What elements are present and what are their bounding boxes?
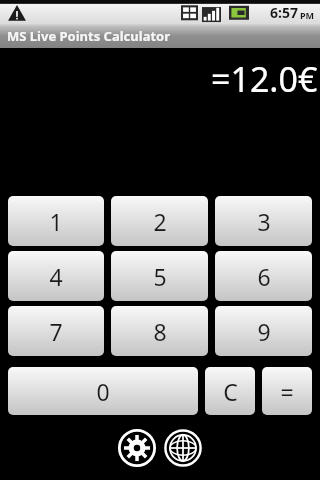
staticText: 6 <box>257 261 271 292</box>
button[interactable]: 2 <box>111 196 208 246</box>
button[interactable]: 1 <box>8 196 104 246</box>
staticText: 6:57 <box>270 3 298 22</box>
staticText: 4 <box>49 261 63 292</box>
button[interactable]: = <box>262 367 312 415</box>
staticText: 2 <box>153 206 167 237</box>
staticText: C <box>223 376 238 407</box>
button[interactable]: 9 <box>215 306 312 356</box>
staticText: MS Live Points Calculator <box>7 27 171 45</box>
button[interactable]: 4 <box>8 251 104 301</box>
button[interactable]: 3 <box>215 196 312 246</box>
button[interactable]: Language <box>161 426 205 470</box>
button[interactable]: 8 <box>111 306 208 356</box>
staticText: 7 <box>49 316 63 347</box>
staticText: 0 <box>96 376 110 407</box>
button[interactable]: C <box>205 367 255 415</box>
staticText: 9 <box>257 316 271 347</box>
staticText: 1 <box>49 206 63 237</box>
staticText: 5 <box>153 261 167 292</box>
button[interactable]: 5 <box>111 251 208 301</box>
staticText: 8 <box>153 316 167 347</box>
staticText: PM <box>300 9 315 21</box>
button[interactable]: 7 <box>8 306 104 356</box>
staticText: 3 <box>257 206 271 237</box>
button[interactable]: 0 <box>8 367 198 415</box>
staticText: =12.0€ <box>211 56 318 102</box>
button[interactable]: Settings <box>115 426 159 470</box>
button[interactable]: 6 <box>215 251 312 301</box>
staticText: = <box>280 376 294 407</box>
